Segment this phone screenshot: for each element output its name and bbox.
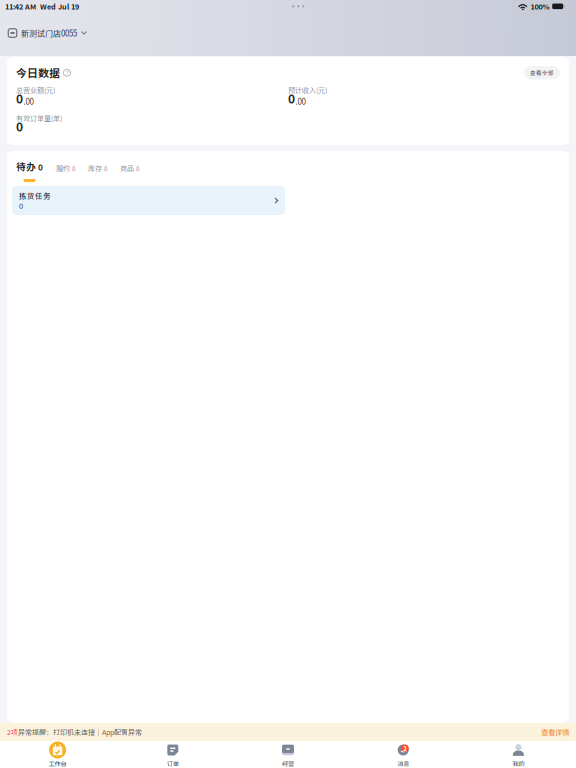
staticText: 0 [16, 90, 23, 107]
staticText: 0 [16, 118, 23, 135]
staticText: 查看全部 [530, 69, 554, 77]
staticText: 异常提醒：打印机未连接｜App配置异常 [18, 727, 142, 737]
button[interactable]: 工作台 [0, 741, 115, 768]
button[interactable]: 待办 [16, 159, 43, 182]
staticText: 今日数据 [16, 65, 60, 80]
staticText: 库存 [88, 163, 102, 173]
staticText: 0 [19, 200, 23, 211]
staticText: 11:42 AM [5, 1, 36, 12]
staticText: Wed Jul 19 [36, 1, 79, 12]
button[interactable]: 履约 [56, 159, 75, 182]
staticText: 我的 [512, 759, 524, 768]
staticText: 商品 [120, 163, 134, 173]
staticText: 100% [530, 1, 549, 12]
button[interactable]: 拣货任务 [12, 186, 285, 215]
button[interactable]: 我的 [461, 741, 576, 768]
staticText: 新测试门店0055 [21, 27, 77, 39]
staticText: 2 [403, 743, 407, 753]
staticText: 拣货任务 [19, 190, 51, 201]
staticText: 0 [104, 164, 107, 173]
staticText: .00 [295, 95, 305, 107]
staticText: 2项 [7, 727, 18, 737]
staticText: 总营业额(元) [16, 85, 55, 95]
staticText: 工作台 [49, 759, 67, 768]
staticText: ? [65, 68, 68, 78]
button[interactable]: 2项 [0, 723, 576, 741]
staticText: 0 [288, 90, 295, 107]
staticText: .00 [23, 95, 33, 107]
staticText: 经营 [282, 759, 294, 768]
button[interactable]: 经营 [230, 741, 346, 768]
button[interactable]: 订单 [115, 741, 230, 768]
staticText: 查看详情 [541, 727, 569, 737]
button[interactable]: 新测试门店0055 [8, 27, 87, 39]
staticText: 0 [136, 164, 139, 173]
staticText: 有效订单量(单) [16, 113, 62, 123]
button[interactable]: 2 [346, 741, 461, 768]
staticText: 0 [38, 161, 43, 173]
staticText: 待办 [16, 159, 36, 173]
button[interactable]: 商品 [120, 159, 139, 182]
staticText: 订单 [167, 759, 179, 768]
staticText: 履约 [56, 163, 70, 173]
button[interactable]: 查看全部 [524, 66, 560, 79]
staticText: 0 [72, 164, 75, 173]
staticText: 消息 [397, 759, 409, 768]
staticText: 预计收入(元) [288, 85, 327, 95]
button[interactable]: 库存 [88, 159, 107, 182]
